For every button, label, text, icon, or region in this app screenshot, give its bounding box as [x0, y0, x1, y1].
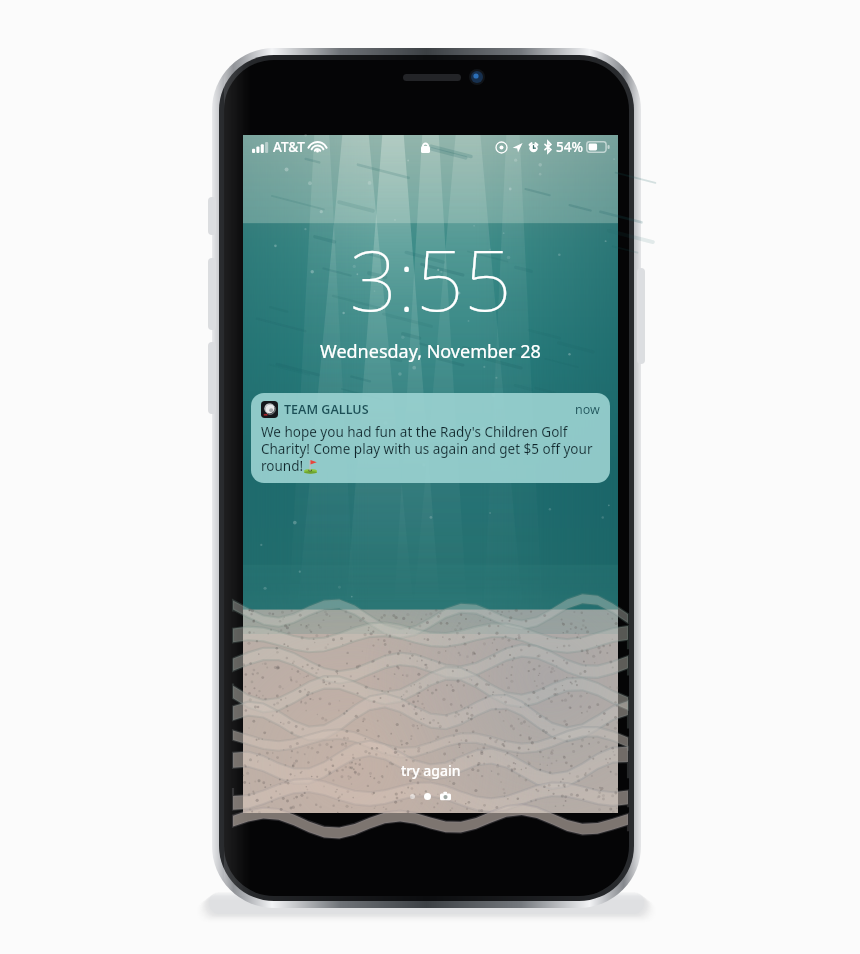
button[interactable]: try again [387, 758, 475, 783]
staticText: Wednesday, November 28 [320, 339, 541, 364]
button[interactable]: Camera [440, 791, 451, 802]
staticText: try again [401, 761, 461, 780]
staticText: AT&T [273, 138, 305, 156]
button[interactable]: TEAM GALLUS [251, 393, 610, 483]
staticText: We hope you had fun at the Rady's Childr… [261, 423, 600, 475]
staticText: 54% [556, 138, 583, 156]
staticText: 3:55 [349, 221, 512, 335]
staticText: now [575, 401, 600, 418]
staticText: TEAM GALLUS [284, 401, 369, 418]
